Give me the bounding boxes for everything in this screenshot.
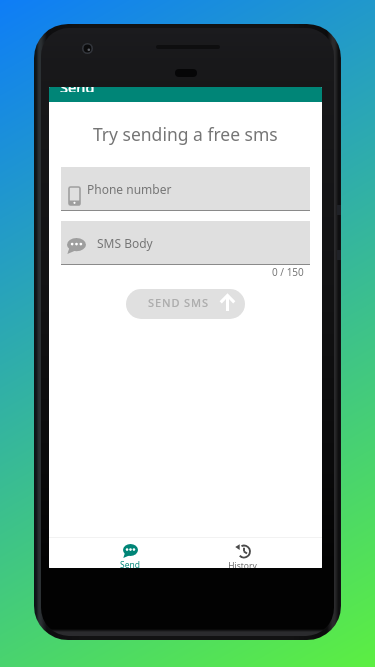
button[interactable]: Send <box>49 87 322 102</box>
staticText: SMS Body <box>97 235 153 251</box>
other: Send <box>123 544 138 558</box>
staticText: Phone number <box>87 181 172 197</box>
button[interactable]: Phone number <box>61 167 310 210</box>
staticText: Try sending a free sms <box>93 122 278 146</box>
staticText: Send <box>120 559 140 568</box>
staticText: History <box>228 560 257 568</box>
other: History <box>234 544 251 559</box>
button[interactable]: History <box>186 538 298 568</box>
button[interactable]: SMS Body <box>61 221 310 264</box>
button[interactable]: SEND SMS <box>126 289 245 319</box>
staticText: SEND SMS <box>148 295 210 310</box>
staticText: 0 / 150 <box>272 265 304 279</box>
staticText: Send <box>60 87 95 92</box>
button[interactable]: Send <box>74 538 186 568</box>
